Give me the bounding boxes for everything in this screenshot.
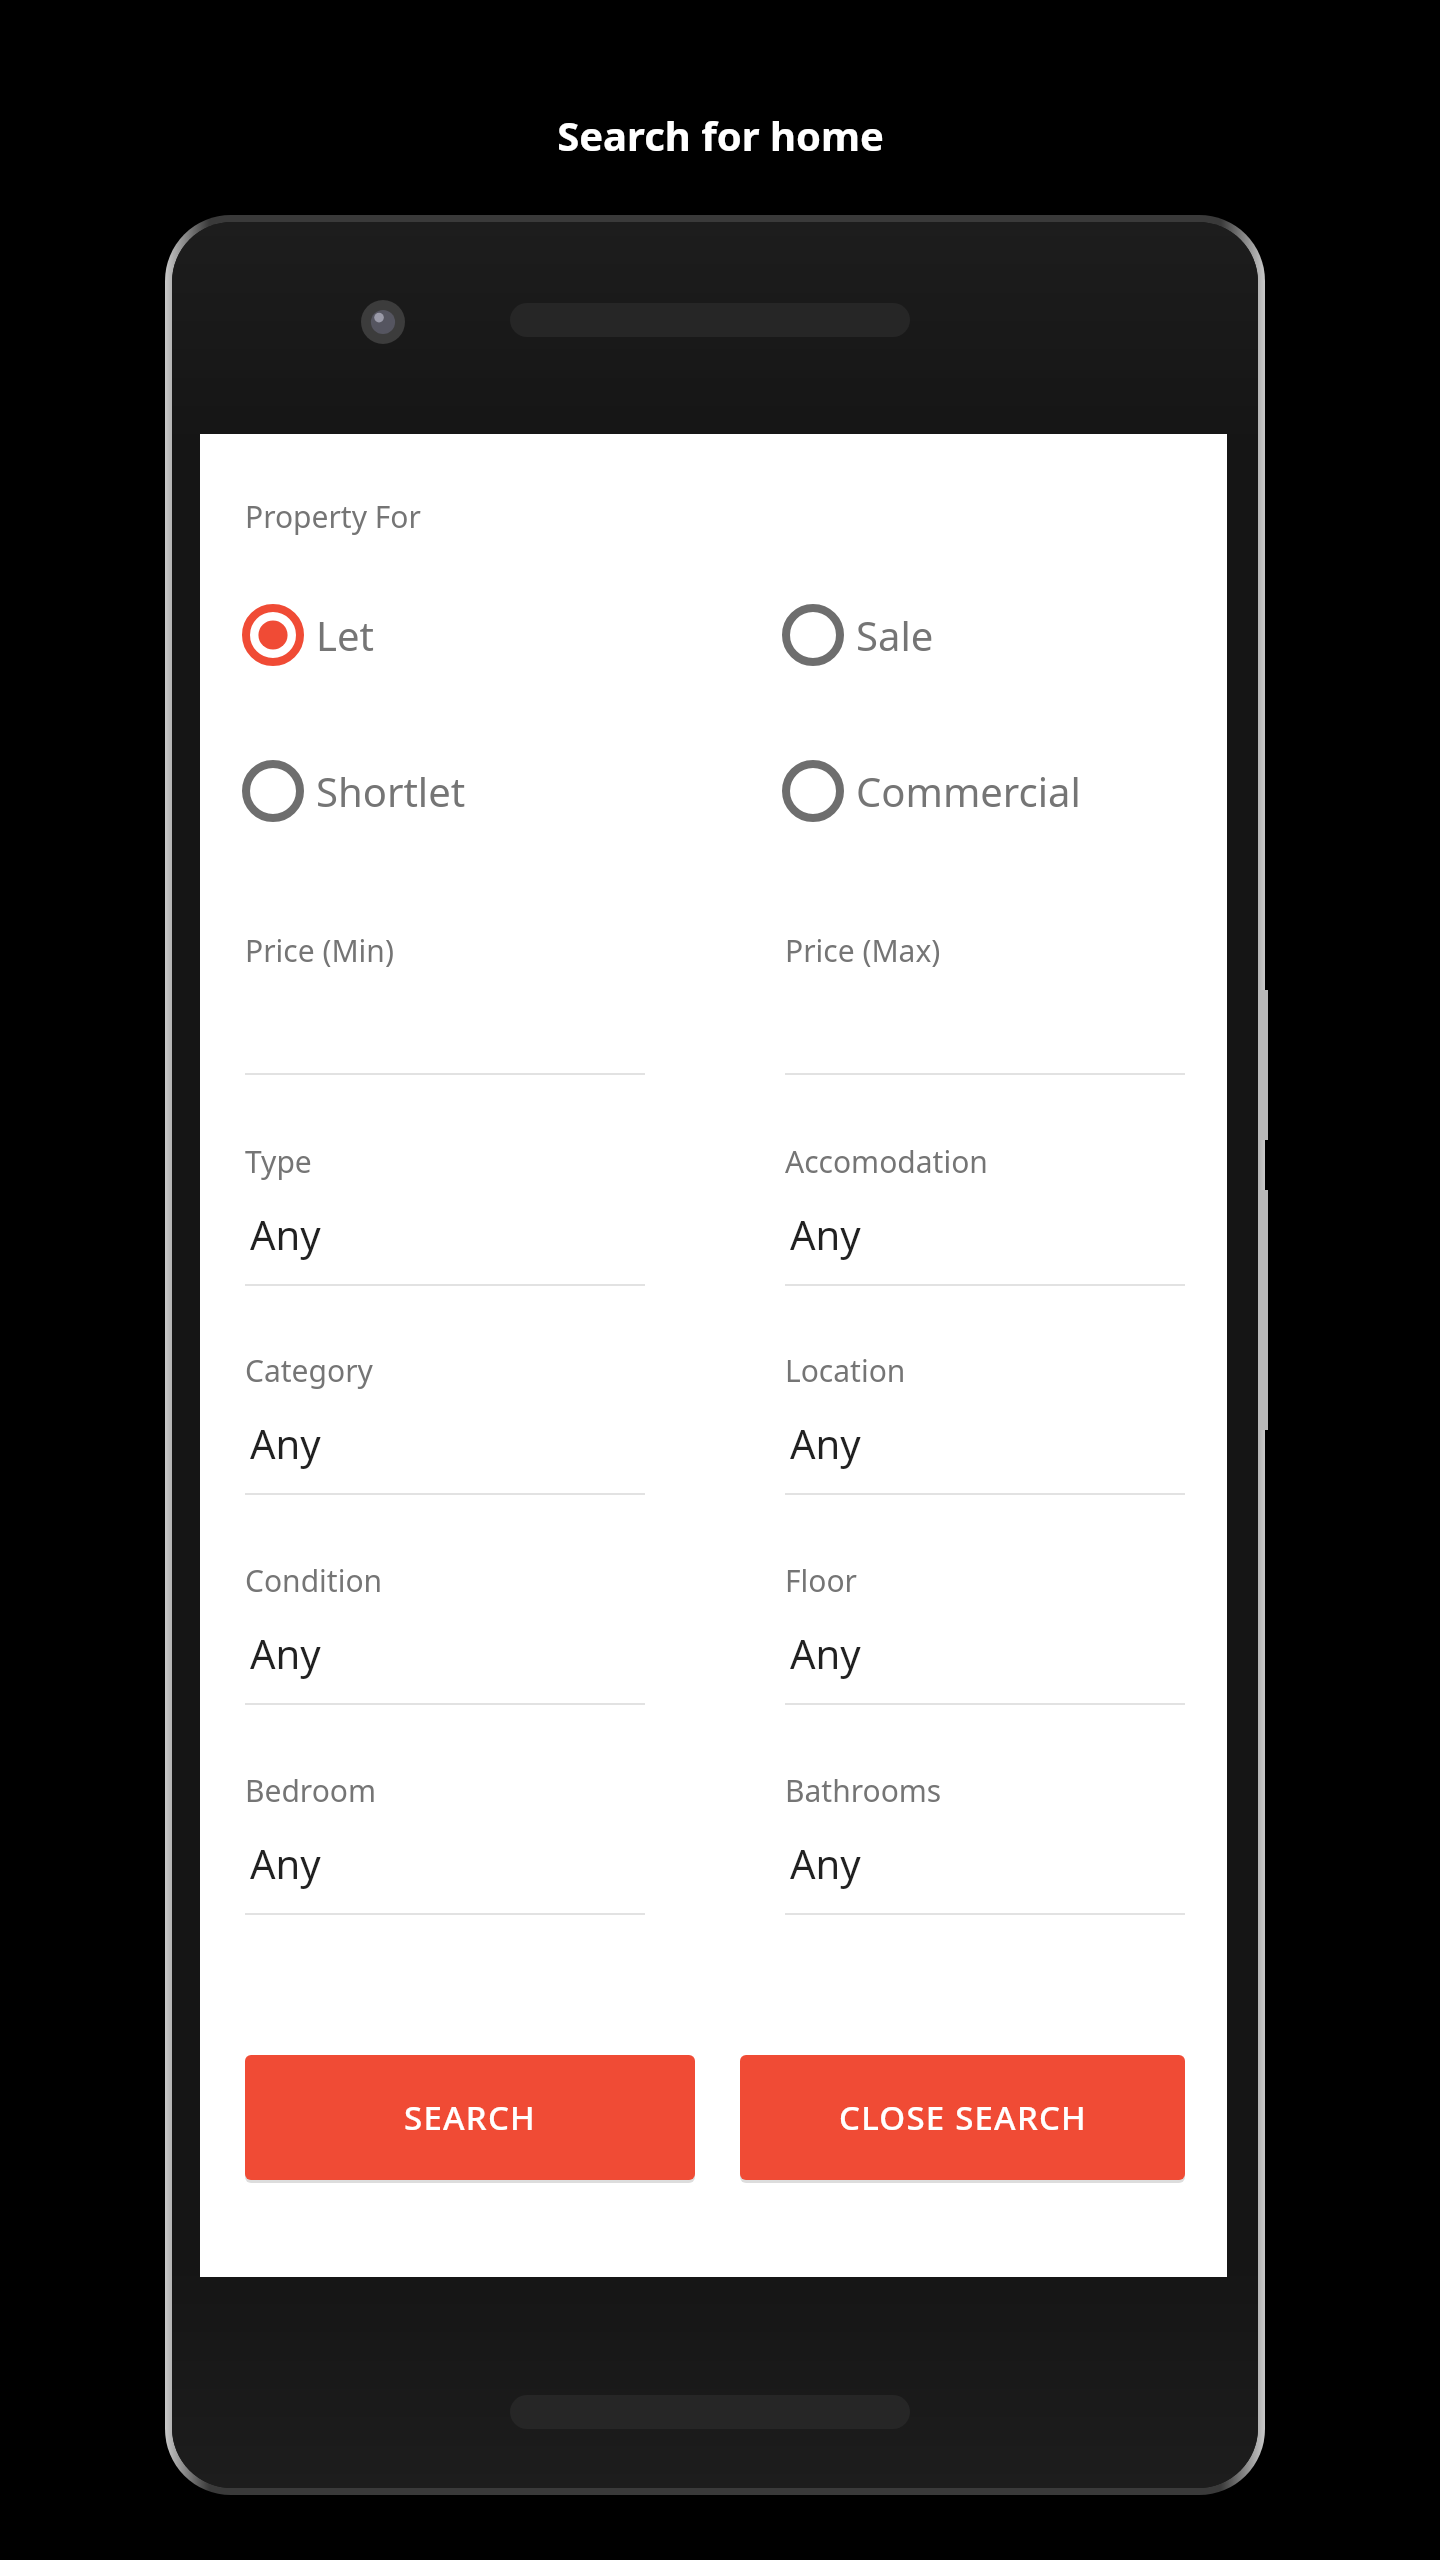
staticText: Category (245, 1350, 373, 1391)
staticText: Sale (856, 608, 934, 662)
button[interactable]: Shortlet (242, 760, 466, 822)
staticText: Type (245, 1141, 312, 1182)
button[interactable]: Let (242, 604, 374, 666)
button[interactable]: CLOSE SEARCH (740, 2055, 1185, 2180)
staticText: Price (Min) (245, 930, 394, 971)
button[interactable]: Sale (782, 604, 934, 666)
staticText: Let (316, 608, 374, 662)
staticText: Accomodation (785, 1141, 988, 1182)
staticText: Location (785, 1350, 906, 1391)
staticText: Any (250, 1626, 321, 1680)
staticText: Bedroom (245, 1770, 377, 1811)
staticText: SEARCH (404, 2095, 536, 2140)
staticText: Any (790, 1416, 861, 1470)
staticText: Any (250, 1836, 321, 1890)
staticText: Price (Max) (785, 930, 941, 971)
staticText: Property For (245, 496, 421, 537)
button[interactable]: Commercial (782, 760, 1081, 822)
staticText: Bathrooms (785, 1770, 942, 1811)
staticText: Search for home (557, 108, 884, 162)
staticText: Commercial (856, 764, 1081, 818)
button[interactable]: SEARCH (245, 2055, 695, 2180)
staticText: Any (790, 1207, 861, 1261)
staticText: Any (790, 1836, 861, 1890)
staticText: Condition (245, 1560, 383, 1601)
staticText: Any (250, 1207, 321, 1261)
staticText: Any (790, 1626, 861, 1680)
staticText: Shortlet (316, 764, 466, 818)
staticText: CLOSE SEARCH (839, 2095, 1087, 2140)
staticText: Floor (785, 1560, 857, 1601)
staticText: Any (250, 1416, 321, 1470)
